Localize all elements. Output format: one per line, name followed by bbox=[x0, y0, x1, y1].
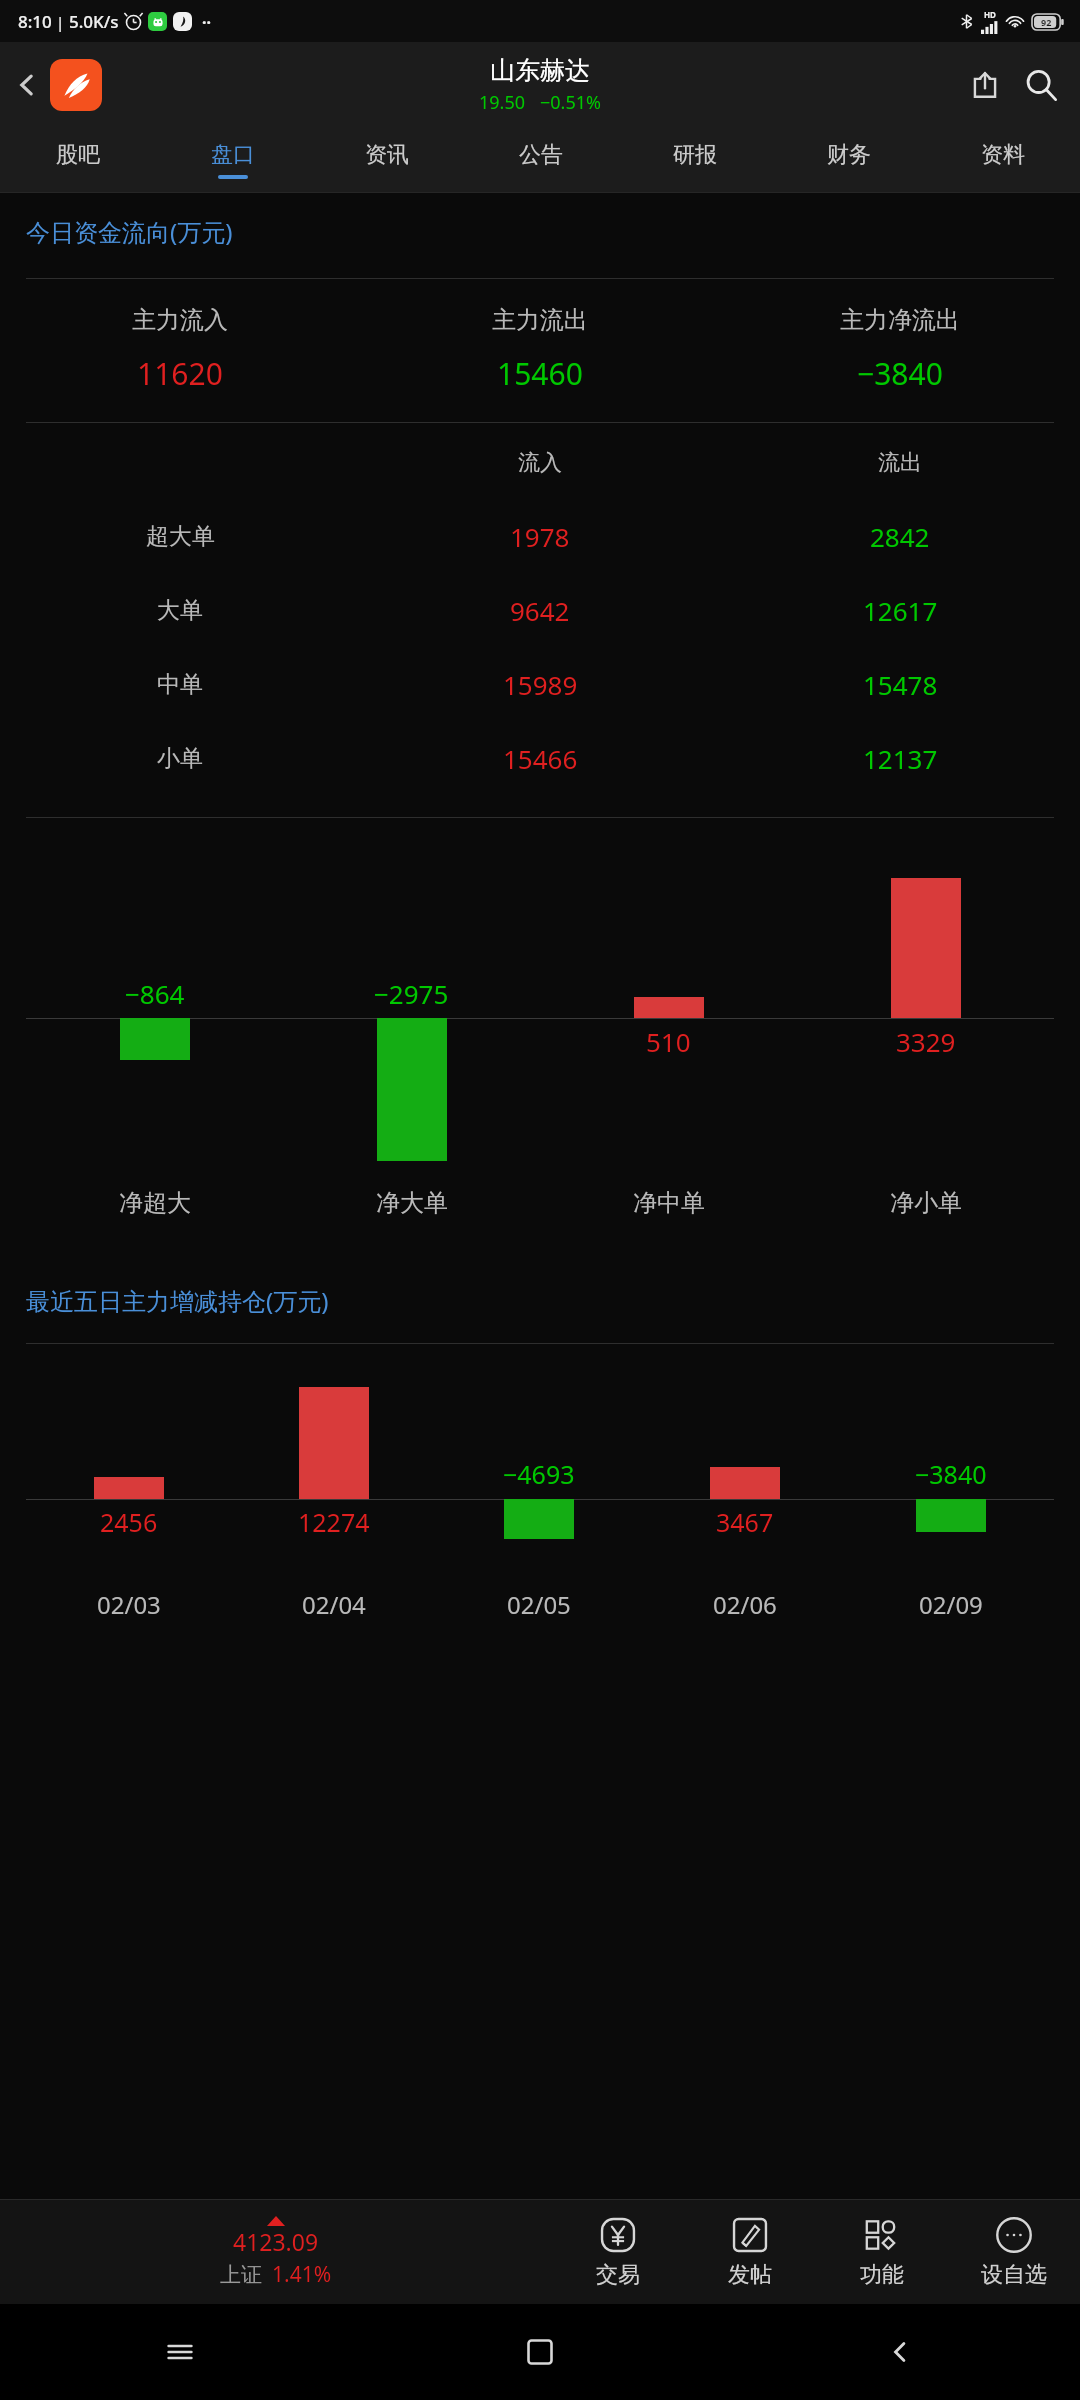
staticText: −864 bbox=[125, 976, 185, 1011]
staticText: 公告 bbox=[519, 141, 563, 169]
staticText: 3329 bbox=[896, 1024, 956, 1059]
button[interactable]: 研报 bbox=[618, 128, 772, 192]
button[interactable]: 发帖 bbox=[684, 2200, 816, 2304]
staticText: 大单 bbox=[157, 596, 203, 625]
button[interactable]: 功能 bbox=[816, 2200, 948, 2304]
staticText: 510 bbox=[646, 1024, 691, 1059]
staticText: 1.41% bbox=[272, 2260, 332, 2289]
staticText: HD bbox=[984, 9, 996, 20]
staticText: 15460 bbox=[497, 353, 583, 394]
staticText: 15989 bbox=[503, 667, 578, 702]
staticText: 3467 bbox=[716, 1505, 774, 1539]
staticText: 设自选 bbox=[981, 2261, 1047, 2289]
staticText: 净大单 bbox=[376, 1188, 448, 1218]
button[interactable]: Recent apps bbox=[0, 2304, 360, 2400]
staticText: 主力净流出 bbox=[840, 305, 960, 335]
staticText: 最近五日主力增减持仓(万元) bbox=[26, 1284, 329, 1317]
staticText: 净小单 bbox=[890, 1188, 962, 1218]
staticText: 02/06 bbox=[713, 1588, 777, 1621]
staticText: −3840 bbox=[857, 353, 943, 394]
button[interactable]: Back bbox=[720, 2304, 1080, 2400]
staticText: 92 bbox=[1041, 16, 1052, 28]
button[interactable]: Share bbox=[958, 58, 1012, 112]
staticText: 山东赫达 bbox=[490, 55, 590, 86]
button[interactable]: App bbox=[50, 59, 102, 111]
button[interactable]: 主力流出 bbox=[360, 305, 720, 394]
staticText: 发帖 bbox=[728, 2261, 772, 2289]
staticText: 股吧 bbox=[56, 141, 100, 169]
staticText: 02/04 bbox=[302, 1588, 366, 1621]
staticText: 超大单 bbox=[146, 522, 215, 551]
staticText: 9642 bbox=[510, 593, 570, 628]
button[interactable]: Search bbox=[1012, 56, 1070, 114]
staticText: 主力流入 bbox=[132, 305, 228, 335]
staticText: 02/05 bbox=[507, 1588, 571, 1621]
staticText: 15466 bbox=[503, 741, 578, 776]
button[interactable]: 资讯 bbox=[310, 128, 464, 192]
button[interactable]: 资料 bbox=[926, 128, 1080, 192]
staticText: 净中单 bbox=[633, 1188, 705, 1218]
staticText: 功能 bbox=[860, 2261, 904, 2289]
staticText: 上证 bbox=[220, 2262, 262, 2288]
staticText: 1978 bbox=[510, 519, 570, 554]
button[interactable]: 主力净流出 bbox=[720, 305, 1080, 394]
staticText: 资讯 bbox=[365, 141, 409, 169]
staticText: 流入 bbox=[518, 449, 562, 477]
staticText: 15478 bbox=[863, 667, 938, 702]
staticText: 12137 bbox=[863, 741, 938, 776]
button[interactable]: 公告 bbox=[464, 128, 618, 192]
staticText: 小单 bbox=[157, 744, 203, 773]
button[interactable]: 股吧 bbox=[0, 128, 155, 192]
staticText: | bbox=[56, 12, 65, 32]
staticText: 02/09 bbox=[919, 1588, 983, 1621]
staticText: 流出 bbox=[878, 449, 922, 477]
button[interactable]: 主力流入 bbox=[0, 305, 360, 394]
button[interactable]: Home bbox=[360, 2304, 720, 2400]
staticText: 盘口 bbox=[211, 141, 255, 169]
staticText: 8:10 bbox=[18, 10, 52, 33]
button[interactable]: Back bbox=[0, 58, 54, 112]
button[interactable]: 4123.09 bbox=[0, 2200, 552, 2304]
staticText: 主力流出 bbox=[492, 305, 588, 335]
button[interactable]: 财务 bbox=[772, 128, 926, 192]
button[interactable]: 设自选 bbox=[948, 2200, 1080, 2304]
staticText: 今日资金流向(万元) bbox=[26, 215, 233, 248]
staticText: −2975 bbox=[374, 976, 449, 1011]
staticText: 2842 bbox=[870, 519, 930, 554]
staticText: 12617 bbox=[863, 593, 938, 628]
staticText: 11620 bbox=[137, 353, 223, 394]
staticText: 19.50 bbox=[479, 90, 526, 115]
staticText: −0.51% bbox=[540, 90, 601, 115]
staticText: 02/03 bbox=[97, 1588, 161, 1621]
staticText: 4123.09 bbox=[233, 2226, 319, 2257]
staticText: 2456 bbox=[100, 1505, 158, 1539]
staticText: −3840 bbox=[915, 1457, 987, 1491]
staticText: 中单 bbox=[157, 670, 203, 699]
staticText: ·· bbox=[202, 11, 211, 33]
staticText: 5.0K/s bbox=[69, 10, 119, 33]
staticText: 财务 bbox=[827, 141, 871, 169]
staticText: 资料 bbox=[981, 141, 1025, 169]
button[interactable]: 盘口 bbox=[155, 128, 310, 192]
staticText: 研报 bbox=[673, 141, 717, 169]
staticText: −4693 bbox=[503, 1457, 575, 1491]
staticText: 12274 bbox=[298, 1505, 370, 1539]
button[interactable]: 交易 bbox=[552, 2200, 684, 2304]
staticText: 净超大 bbox=[119, 1188, 191, 1218]
staticText: 交易 bbox=[596, 2261, 640, 2289]
